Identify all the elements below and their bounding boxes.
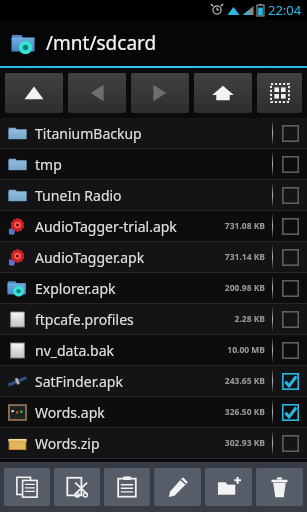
staticText: 2.28 KB	[234, 313, 265, 325]
button[interactable]: Rename	[154, 468, 201, 506]
button[interactable]: Copy	[4, 468, 50, 506]
button[interactable]: Words.zip	[0, 428, 307, 458]
button[interactable]: Select TitaniumBackup	[273, 118, 307, 148]
staticText: TitaniumBackup	[35, 124, 265, 143]
button[interactable]: Forward	[131, 73, 189, 113]
staticText: /mnt/sdcard	[46, 30, 157, 56]
button[interactable]: Back	[68, 73, 126, 113]
staticText: 326.50 KB	[224, 406, 265, 418]
staticText: ftpcafe.profiles	[35, 310, 234, 329]
staticText: 200.98 KB	[224, 282, 265, 294]
button[interactable]: Select nv_data.bak	[273, 335, 307, 365]
staticText: 10.00 MB	[227, 344, 265, 356]
button[interactable]: Select TuneIn Radio	[273, 180, 307, 210]
staticText: nv_data.bak	[35, 341, 227, 360]
button[interactable]: Select Explorer.apk	[273, 273, 307, 303]
staticText: TuneIn Radio	[35, 186, 265, 205]
button[interactable]: Paste	[104, 468, 150, 506]
button[interactable]: Up	[5, 73, 63, 113]
button[interactable]: Select AudioTagger-trial.apk	[273, 211, 307, 241]
button[interactable]: AudioTagger.apk	[0, 242, 307, 272]
staticText: Words.zip	[35, 434, 224, 453]
button[interactable]: nv_data.bak	[0, 335, 307, 365]
button[interactable]: Select tmp	[273, 149, 307, 179]
button[interactable]: Select Words.apk	[273, 397, 307, 427]
button[interactable]: /mnt/sdcard	[0, 20, 307, 66]
staticText: 731.08 KB	[224, 220, 265, 232]
staticText: SatFinder.apk	[35, 372, 224, 391]
button[interactable]: Words.apk	[0, 397, 307, 427]
button[interactable]: AudioTagger-trial.apk	[0, 211, 307, 241]
button[interactable]: tmp	[0, 149, 307, 179]
button[interactable]: TuneIn Radio	[0, 180, 307, 210]
staticText: 731.14 KB	[224, 251, 265, 263]
button[interactable]: Select SatFinder.apk	[273, 366, 307, 396]
staticText: Words.apk	[35, 403, 224, 422]
button[interactable]: Select all	[257, 73, 302, 113]
staticText: AudioTagger-trial.apk	[35, 217, 224, 236]
button[interactable]: Cut	[54, 468, 100, 506]
staticText: 243.65 KB	[224, 375, 265, 387]
button[interactable]: Delete	[256, 468, 303, 506]
staticText: Explorer.apk	[35, 279, 224, 298]
button[interactable]: Select ftpcafe.profiles	[273, 304, 307, 334]
button[interactable]: ftpcafe.profiles	[0, 304, 307, 334]
staticText: 22:04	[268, 1, 302, 19]
button[interactable]: New folder	[205, 468, 252, 506]
staticText: AudioTagger.apk	[35, 248, 224, 267]
button[interactable]: SatFinder.apk	[0, 366, 307, 396]
button[interactable]: Home	[194, 73, 252, 113]
button[interactable]: Explorer.apk	[0, 273, 307, 303]
button[interactable]: Select Words.zip	[273, 428, 307, 458]
staticText: 302.93 KB	[224, 437, 265, 449]
button[interactable]: Select AudioTagger.apk	[273, 242, 307, 272]
staticText: tmp	[35, 155, 265, 174]
button[interactable]: TitaniumBackup	[0, 118, 307, 148]
